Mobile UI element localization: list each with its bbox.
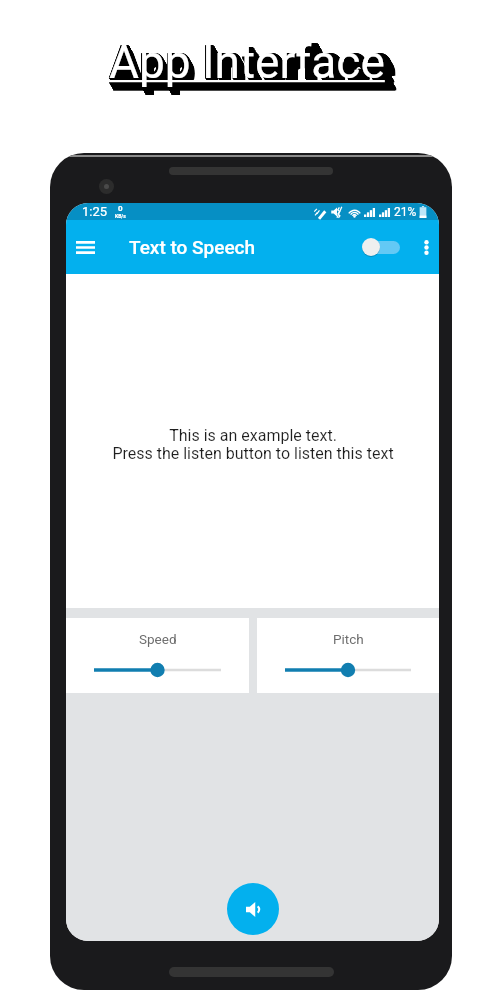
staticText: App Interface	[113, 41, 396, 95]
staticText: App Interface	[111, 38, 394, 92]
staticText: App Interface	[111, 38, 394, 92]
button[interactable]: Toggle speech	[362, 234, 400, 260]
staticText: App Interface	[113, 41, 396, 95]
staticText: App Interface	[109, 35, 392, 89]
staticText: App Interface	[111, 38, 394, 92]
button[interactable]: Open navigation menu	[66, 227, 105, 267]
staticText: App Interface	[112, 41, 395, 95]
staticText: App Interface	[110, 36, 393, 90]
staticText: 21%	[394, 205, 417, 219]
staticText: App Interface	[113, 42, 396, 96]
staticText: App Interface	[114, 43, 397, 97]
staticText: App Interface	[112, 40, 395, 94]
staticText: App Interface	[111, 39, 394, 93]
staticText: App Interface	[111, 39, 394, 93]
staticText: App Interface	[111, 38, 394, 92]
staticText: App Interface	[113, 42, 396, 96]
staticText: App Interface	[113, 42, 396, 96]
staticText: App Interface	[111, 39, 394, 93]
staticText: App Interface	[113, 42, 396, 96]
staticText: App Interface	[113, 42, 396, 96]
staticText: App Interface	[110, 37, 393, 91]
staticText: App Interface	[111, 38, 394, 92]
staticText: App Interface	[110, 37, 393, 91]
button[interactable]: Speed	[66, 618, 249, 693]
staticText: App Interface	[112, 41, 395, 95]
staticText: App Interface	[113, 43, 396, 97]
staticText: App Interface	[112, 40, 395, 94]
staticText: App Interface	[109, 35, 392, 89]
button[interactable]: More options	[414, 235, 438, 259]
staticText: App Interface	[109, 36, 392, 90]
staticText: App Interface	[111, 38, 394, 92]
staticText: App Interface	[110, 36, 393, 90]
staticText: App Interface	[109, 35, 385, 89]
staticText: App Interface	[110, 37, 393, 91]
staticText: KB/s	[115, 213, 126, 219]
staticText: App Interface	[109, 36, 392, 90]
staticText: Speed	[139, 631, 177, 647]
staticText: App Interface	[110, 37, 393, 91]
button[interactable]: Pitch	[257, 618, 439, 693]
staticText: App Interface	[109, 36, 392, 90]
staticText: App Interface	[112, 40, 395, 94]
button[interactable]: Listen	[227, 883, 279, 935]
staticText: App Interface	[113, 43, 396, 97]
staticText: Text to Speech	[129, 236, 256, 258]
staticText: App Interface	[112, 41, 395, 95]
staticText: App Interface	[112, 40, 395, 94]
staticText: App Interface	[110, 37, 393, 91]
staticText: App Interface	[112, 40, 395, 94]
staticText: App Interface	[111, 38, 394, 92]
staticText: App Interface	[113, 43, 396, 97]
staticText: App Interface	[109, 35, 392, 89]
staticText: App Interface	[110, 37, 393, 91]
staticText: 1:25	[82, 204, 108, 219]
staticText: App Interface	[110, 36, 393, 90]
staticText: App Interface	[112, 41, 395, 95]
staticText: App Interface	[110, 36, 393, 90]
staticText: App Interface	[112, 40, 395, 94]
staticText: App Interface	[110, 38, 393, 92]
staticText: This is an example text. Press the liste…	[112, 426, 394, 463]
staticText: App Interface	[113, 42, 396, 96]
staticText: App Interface	[109, 35, 392, 89]
staticText: App Interface	[112, 40, 395, 94]
staticText: App Interface	[111, 39, 394, 93]
staticText: App Interface	[112, 40, 395, 94]
staticText: App Interface	[111, 39, 394, 93]
staticText: App Interface	[111, 39, 394, 93]
staticText: App Interface	[111, 39, 394, 93]
staticText: App Interface	[112, 41, 395, 95]
staticText: App Interface	[113, 42, 396, 96]
staticText: 0	[118, 204, 123, 213]
staticText: App Interface	[110, 36, 393, 90]
staticText: App Interface	[113, 42, 396, 96]
staticText: App Interface	[110, 37, 393, 91]
staticText: Pitch	[333, 631, 364, 647]
